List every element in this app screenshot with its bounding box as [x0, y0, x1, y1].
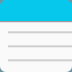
button[interactable] [0, 47, 72, 61]
button[interactable] [0, 23, 72, 33]
button[interactable] [0, 33, 72, 47]
